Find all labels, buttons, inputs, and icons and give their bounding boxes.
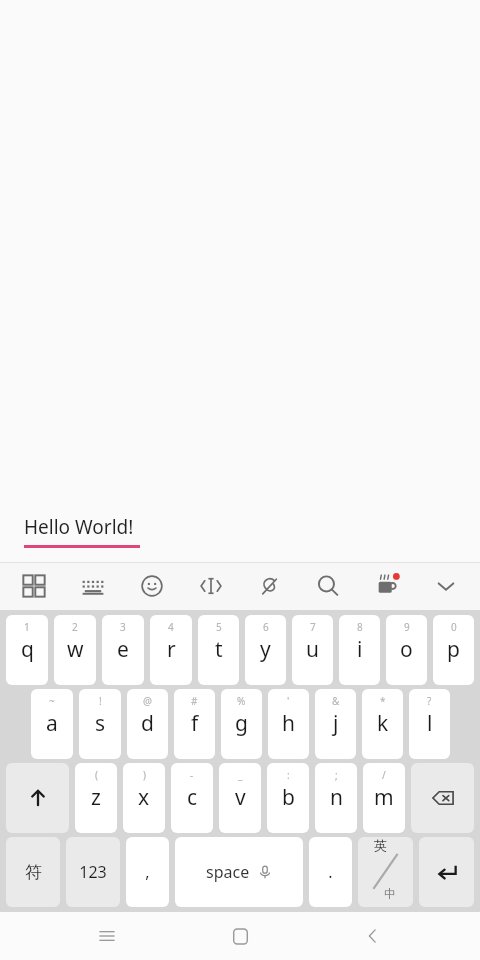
button[interactable]: - xyxy=(171,763,213,833)
staticText: 0 xyxy=(451,620,457,634)
button[interactable]: ; xyxy=(315,763,357,833)
button[interactable]: Clipboard xyxy=(249,566,289,606)
staticText: p xyxy=(447,635,460,664)
button[interactable]: 4 xyxy=(150,615,192,685)
button[interactable]: Shift xyxy=(6,763,69,833)
button[interactable]: Switch language English Chinese xyxy=(358,837,413,907)
staticText: # xyxy=(191,694,198,708)
button[interactable]: 7 xyxy=(292,615,333,685)
staticText: v xyxy=(235,783,246,812)
staticText: z xyxy=(91,783,101,812)
button[interactable]: Hide keyboard xyxy=(426,566,466,606)
staticText: 6 xyxy=(263,620,269,634)
staticText: ) xyxy=(143,768,146,782)
button[interactable]: * xyxy=(362,689,403,759)
button[interactable]: Themes xyxy=(367,566,407,606)
button[interactable]: ( xyxy=(75,763,117,833)
staticText: m xyxy=(374,783,394,812)
staticText: y xyxy=(260,635,271,664)
button[interactable]: Backspace xyxy=(411,763,474,833)
button[interactable]: 符 xyxy=(6,837,60,907)
button[interactable]: 6 xyxy=(245,615,286,685)
staticText: Hello World! xyxy=(24,514,134,540)
button[interactable]: 9 xyxy=(386,615,427,685)
staticText: e xyxy=(117,635,129,664)
button[interactable]: 0 xyxy=(433,615,474,685)
button[interactable]: Keyboard layout xyxy=(73,566,113,606)
staticText: ? xyxy=(427,694,432,708)
staticText: 9 xyxy=(404,620,410,634)
staticText: space xyxy=(206,861,250,883)
button[interactable]: Home xyxy=(214,912,266,960)
button[interactable]: 5 xyxy=(198,615,239,685)
staticText: _ xyxy=(238,768,243,782)
button[interactable]: Text editing xyxy=(191,566,231,606)
staticText: r xyxy=(167,635,176,664)
staticText: 123 xyxy=(79,861,107,883)
staticText: x xyxy=(138,783,150,812)
button[interactable]: 3 xyxy=(102,615,144,685)
button[interactable]: Emoji xyxy=(132,566,172,606)
staticText: l xyxy=(427,709,433,738)
staticText: 3 xyxy=(120,620,126,634)
button[interactable]: ! xyxy=(79,689,121,759)
button[interactable]: : xyxy=(267,763,309,833)
button[interactable]: Toolbox xyxy=(14,566,54,606)
button[interactable]: 1 xyxy=(6,615,48,685)
staticText: ' xyxy=(287,694,290,708)
button[interactable]: @ xyxy=(127,689,168,759)
staticText: 4 xyxy=(168,620,174,634)
staticText: - xyxy=(190,768,194,782)
button[interactable]: ' xyxy=(268,689,309,759)
staticText: g xyxy=(235,709,248,738)
staticText: 5 xyxy=(216,620,222,634)
staticText: q xyxy=(21,635,34,664)
staticText: u xyxy=(306,635,319,664)
staticText: 7 xyxy=(310,620,316,634)
button[interactable]: Recents xyxy=(81,912,133,960)
staticText: o xyxy=(400,635,413,664)
button[interactable]: ? xyxy=(409,689,450,759)
button[interactable]: , xyxy=(126,837,169,907)
button[interactable]: _ xyxy=(219,763,261,833)
staticText: : xyxy=(287,768,290,782)
button[interactable]: ) xyxy=(123,763,165,833)
staticText: / xyxy=(382,768,386,782)
staticText: c xyxy=(187,783,198,812)
staticText: w xyxy=(67,635,84,664)
staticText: * xyxy=(380,694,386,708)
staticText: . xyxy=(328,861,333,883)
button[interactable]: Search xyxy=(308,566,348,606)
staticText: k xyxy=(377,709,389,738)
staticText: 英 xyxy=(374,837,387,853)
button[interactable]: ~ xyxy=(31,689,73,759)
button[interactable]: Enter xyxy=(419,837,474,907)
staticText: t xyxy=(215,635,223,664)
button[interactable]: 123 xyxy=(66,837,120,907)
staticText: , xyxy=(145,861,150,883)
staticText: 2 xyxy=(72,620,78,634)
staticText: ~ xyxy=(49,694,55,708)
staticText: s xyxy=(95,709,106,738)
staticText: ; xyxy=(335,768,338,782)
staticText: n xyxy=(330,783,343,812)
staticText: & xyxy=(332,694,340,708)
button[interactable]: # xyxy=(174,689,215,759)
staticText: 8 xyxy=(357,620,363,634)
staticText: % xyxy=(237,694,246,708)
button[interactable]: . xyxy=(309,837,352,907)
button[interactable]: & xyxy=(315,689,356,759)
staticText: ! xyxy=(99,694,102,708)
staticText: 1 xyxy=(24,620,30,634)
staticText: h xyxy=(282,709,295,738)
staticText: a xyxy=(46,709,58,738)
button[interactable]: % xyxy=(221,689,262,759)
staticText: f xyxy=(191,709,199,738)
button[interactable]: Back xyxy=(347,912,399,960)
staticText: b xyxy=(282,783,295,812)
button[interactable]: 8 xyxy=(339,615,380,685)
button[interactable]: 2 xyxy=(54,615,96,685)
button[interactable]: space xyxy=(175,837,303,907)
button[interactable]: / xyxy=(363,763,405,833)
staticText: 符 xyxy=(25,862,42,883)
